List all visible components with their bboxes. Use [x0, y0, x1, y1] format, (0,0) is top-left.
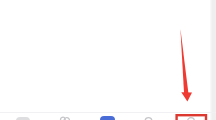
button[interactable]: Messages [43, 112, 86, 120]
button[interactable]: Create [86, 112, 129, 120]
button[interactable]: Notifications [128, 112, 168, 120]
button[interactable]: Home [1, 112, 44, 120]
button[interactable]: Profile [168, 112, 214, 120]
